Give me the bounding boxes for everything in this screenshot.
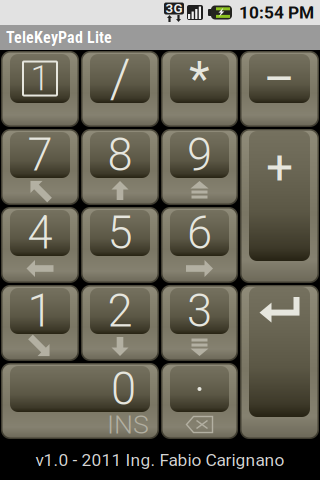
staticText: + bbox=[266, 139, 293, 195]
staticText: 3 bbox=[187, 284, 212, 337]
staticText: 6 bbox=[187, 206, 212, 259]
staticText: 7 bbox=[27, 128, 52, 181]
staticText: – bbox=[263, 50, 295, 107]
staticText: v1.0 - 2011 Ing. Fabio Carignano bbox=[35, 450, 284, 470]
staticText: 5 bbox=[107, 206, 132, 259]
staticText: 4 bbox=[27, 206, 52, 259]
button[interactable]: 1 bbox=[1, 285, 79, 361]
staticText: 9 bbox=[187, 128, 212, 181]
staticText: * bbox=[189, 50, 210, 107]
button[interactable]: / bbox=[81, 51, 159, 127]
staticText: 0 bbox=[111, 362, 136, 415]
button[interactable]: 7 bbox=[1, 129, 79, 205]
button[interactable]: 9 bbox=[161, 129, 238, 205]
staticText: 1 bbox=[30, 58, 49, 99]
button[interactable]: + bbox=[240, 129, 319, 283]
staticText: TeleKeyPad Lite bbox=[6, 28, 112, 47]
button[interactable]: 4 bbox=[1, 207, 79, 283]
button[interactable]: 1 bbox=[1, 51, 79, 127]
staticText: 2 bbox=[107, 284, 132, 337]
button[interactable] bbox=[161, 363, 238, 439]
button[interactable]: 6 bbox=[161, 207, 238, 283]
staticText: 10:54 PM bbox=[239, 2, 314, 23]
button[interactable]: 3 bbox=[161, 285, 238, 361]
button[interactable]: 5 bbox=[81, 207, 159, 283]
staticText: 8 bbox=[107, 128, 132, 181]
staticText: 3G bbox=[165, 1, 182, 16]
button[interactable]: 8 bbox=[81, 129, 159, 205]
button[interactable]: – bbox=[240, 51, 319, 127]
staticText: 1 bbox=[27, 284, 52, 337]
button[interactable] bbox=[240, 285, 319, 439]
staticText: INS bbox=[107, 409, 149, 440]
button[interactable]: INS bbox=[1, 363, 159, 439]
button[interactable]: 2 bbox=[81, 285, 159, 361]
button[interactable]: * bbox=[161, 51, 238, 127]
staticText: / bbox=[109, 47, 130, 110]
